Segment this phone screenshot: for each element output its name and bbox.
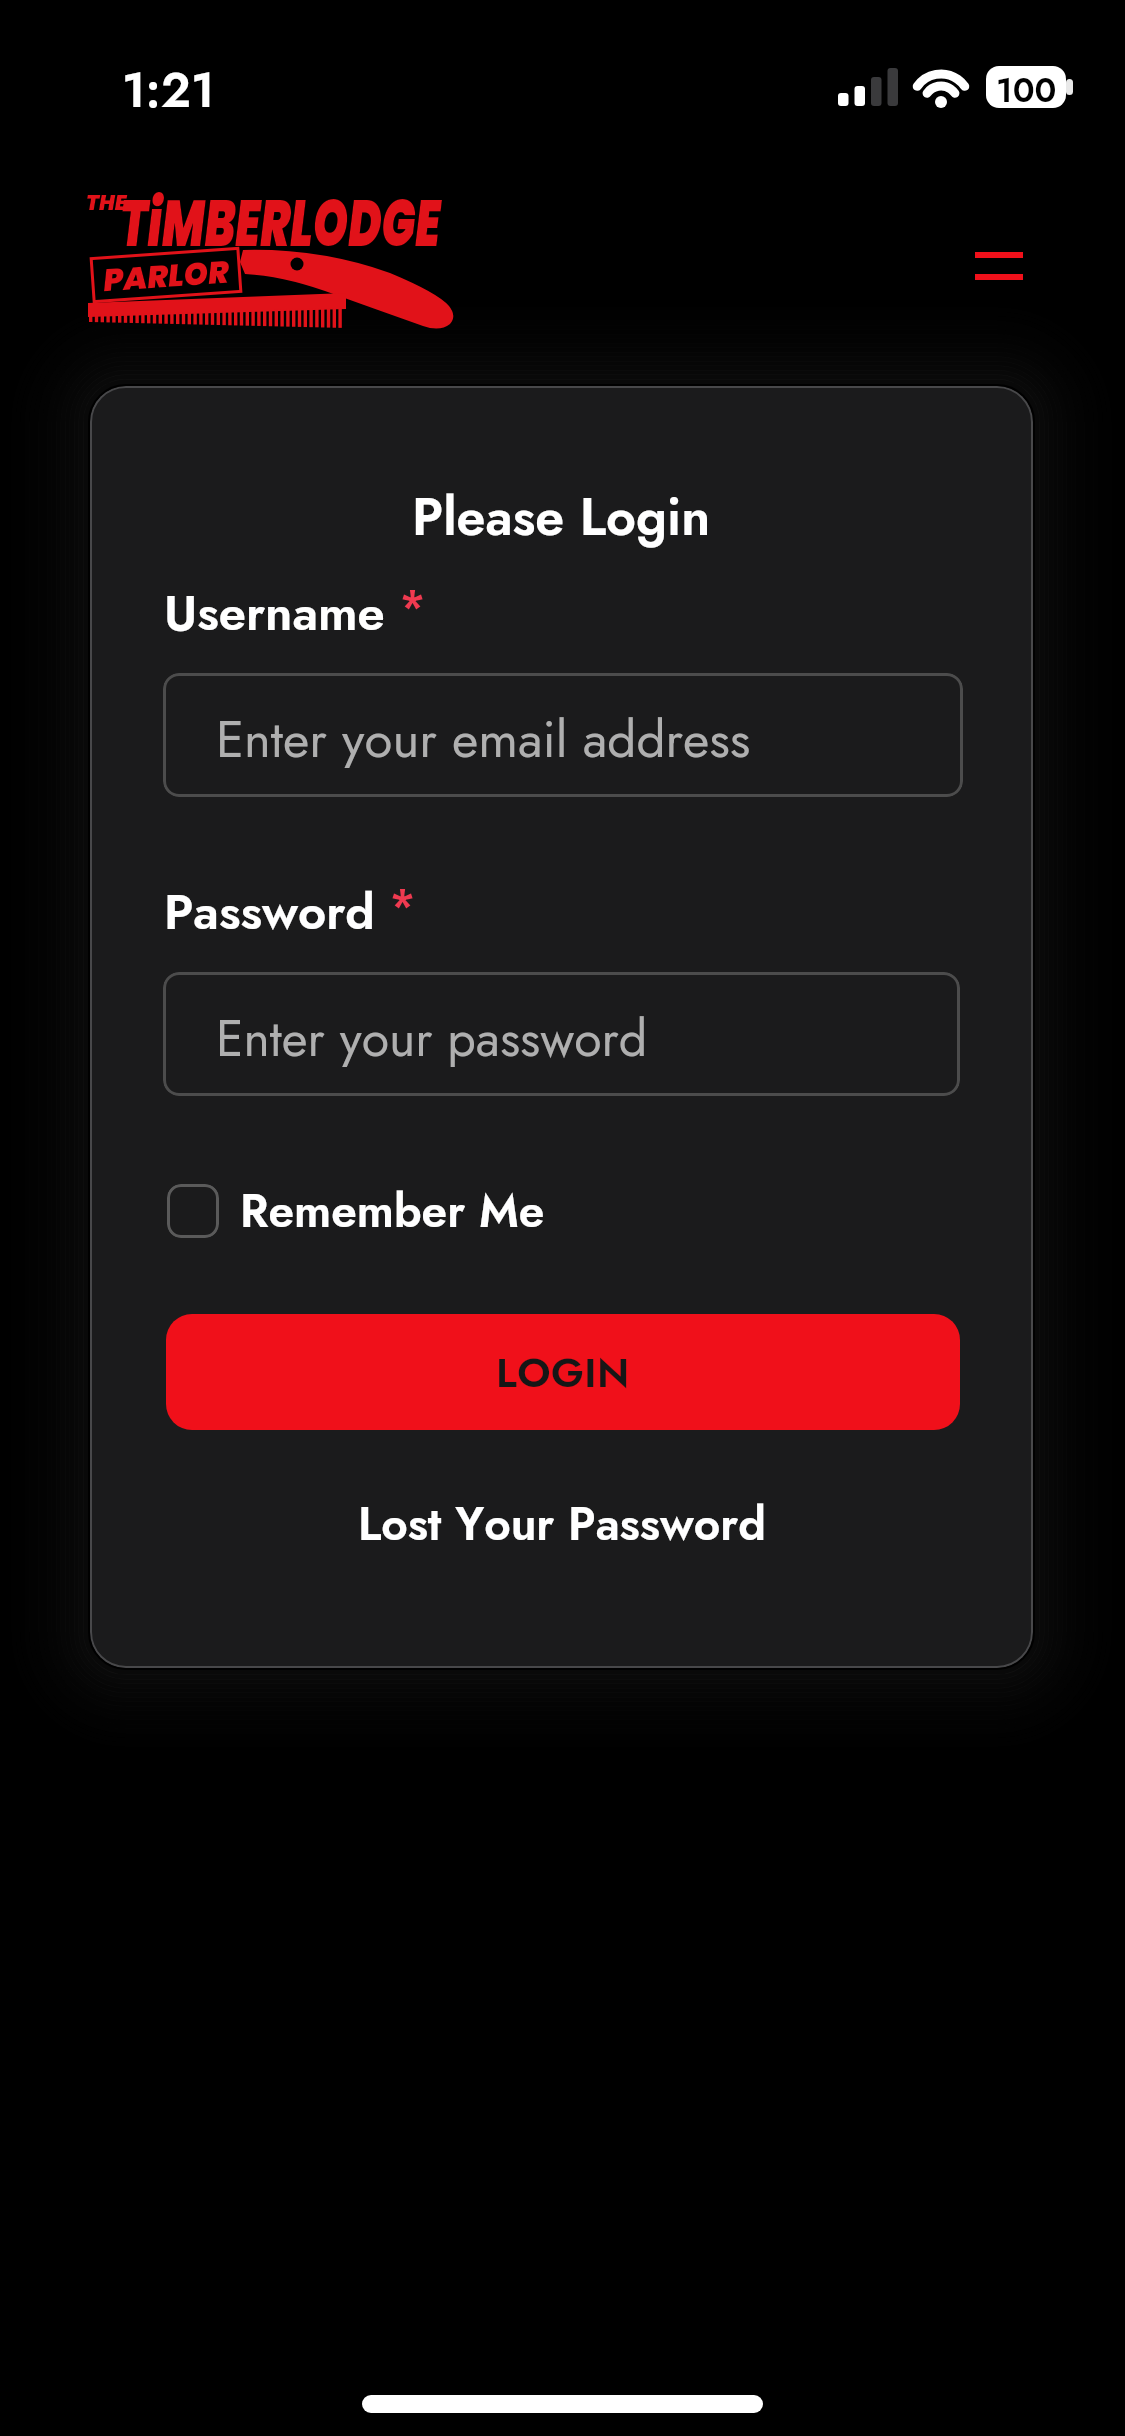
staticText: THE (86, 188, 127, 217)
staticText: LOGIN (496, 1343, 630, 1402)
staticText: Enter your password (216, 1002, 648, 1074)
staticText: 100 (996, 66, 1057, 108)
staticText: 1:21 (122, 56, 215, 125)
staticText: Username * (164, 574, 426, 648)
button[interactable]: Remember Me (167, 1180, 587, 1240)
staticText: Please Login (412, 479, 711, 554)
button[interactable] (963, 240, 1035, 290)
button[interactable]: Enter your password (163, 972, 960, 1096)
button[interactable]: Enter your email address (163, 673, 963, 797)
button[interactable]: Lost Your Password (358, 1491, 766, 1557)
staticText: TiMBERLODGE (120, 179, 441, 269)
button[interactable]: LOGIN (166, 1314, 960, 1430)
staticText: Password * (164, 873, 416, 947)
staticText: Enter your email address (216, 702, 751, 776)
staticText: PARLOR (102, 250, 230, 301)
staticText: Remember Me (240, 1178, 545, 1238)
